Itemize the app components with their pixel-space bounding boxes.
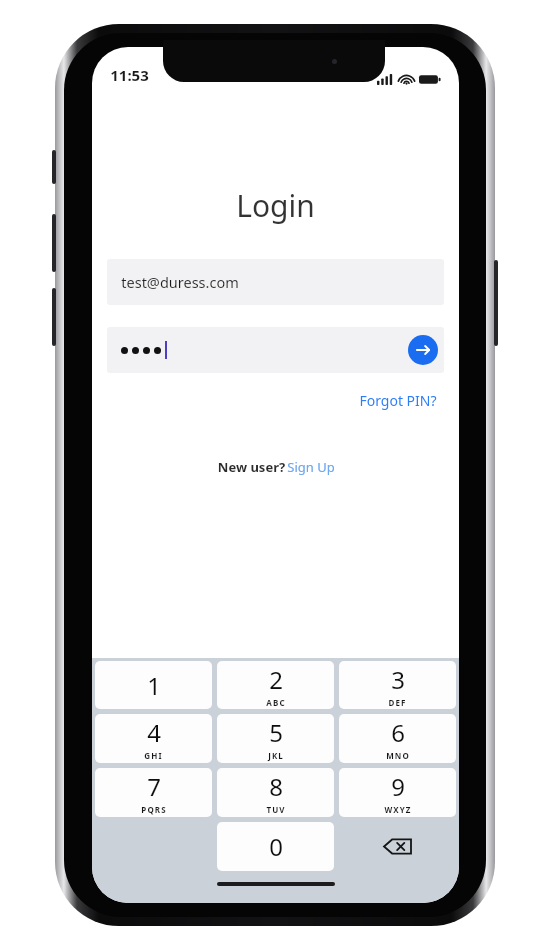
button[interactable]: Submit [408, 335, 438, 365]
staticText: 3 [391, 663, 405, 696]
staticText: 2 [269, 663, 283, 696]
button[interactable]: 0 [217, 822, 334, 871]
button[interactable]: 6 [339, 714, 456, 763]
staticText: 11:53 [110, 65, 149, 85]
staticText: 6 [391, 716, 405, 749]
button[interactable] [107, 327, 444, 373]
staticText: 7 [147, 770, 161, 803]
staticText: TUV [266, 804, 286, 815]
staticText: ABC [266, 697, 286, 708]
button[interactable]: 9 [339, 768, 456, 817]
button[interactable]: Sign Up [287, 458, 335, 476]
button[interactable]: 8 [217, 768, 334, 817]
staticText: 4 [147, 716, 161, 749]
staticText: PQRS [141, 804, 167, 815]
staticText: 9 [391, 770, 405, 803]
button[interactable]: 3 [339, 661, 456, 709]
staticText: test@duress.com [121, 272, 239, 292]
staticText: WXYZ [384, 804, 412, 815]
button[interactable]: Forgot PIN? [355, 387, 441, 414]
staticText: 1 [147, 669, 161, 702]
staticText: 5 [269, 716, 283, 749]
staticText: Login [236, 185, 315, 226]
staticText: Forgot PIN? [359, 391, 437, 410]
staticText: GHI [144, 750, 163, 761]
staticText: New user? [216, 458, 287, 476]
staticText: JKL [268, 750, 284, 761]
button[interactable]: 2 [217, 661, 334, 709]
button[interactable]: Backspace [339, 822, 456, 871]
button[interactable]: 1 [95, 661, 212, 709]
staticText: MNO [386, 750, 410, 761]
staticText: Sign Up [287, 458, 335, 476]
staticText: 0 [269, 830, 283, 863]
button[interactable]: 5 [217, 714, 334, 763]
staticText: DEF [388, 697, 407, 708]
button[interactable]: test@duress.com [107, 259, 444, 305]
button[interactable]: 4 [95, 714, 212, 763]
staticText: 8 [269, 770, 283, 803]
button[interactable]: 7 [95, 768, 212, 817]
